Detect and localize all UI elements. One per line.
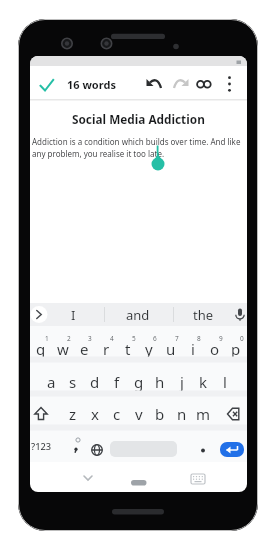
staticText: q [36, 339, 46, 359]
staticText: k [199, 372, 208, 392]
button[interactable] [78, 468, 98, 488]
staticText: a [47, 372, 56, 392]
staticText: u [166, 339, 176, 359]
staticText: c [113, 404, 121, 424]
staticText: b [155, 404, 165, 424]
staticText: I [71, 306, 76, 324]
staticText: m [196, 404, 211, 424]
staticText: t [125, 339, 131, 359]
staticText: z [69, 404, 77, 424]
button[interactable] [125, 468, 155, 488]
staticText: Addiction is a condition which builds ov… [32, 136, 241, 147]
staticText: f [114, 372, 120, 392]
staticText: l [223, 372, 227, 392]
staticText: 9 [219, 334, 223, 343]
button[interactable] [169, 74, 191, 96]
staticText: Social Media Addiction [72, 111, 205, 127]
button[interactable] [191, 74, 213, 96]
staticText: j [180, 372, 184, 392]
button[interactable] [188, 468, 208, 488]
staticText: the [193, 306, 214, 324]
button[interactable] [30, 126, 247, 296]
staticText: i [191, 339, 195, 359]
staticText: w [57, 339, 69, 359]
staticText: 0 [240, 334, 244, 343]
staticText: e [80, 339, 89, 359]
button[interactable] [48, 303, 108, 326]
staticText: 6 [153, 334, 157, 343]
staticText: 2 [67, 334, 71, 343]
staticText: 5 [132, 334, 136, 343]
button[interactable] [220, 442, 244, 457]
staticText: 4 [110, 334, 114, 343]
button[interactable] [34, 74, 56, 96]
staticText: 3 [88, 334, 92, 343]
staticText: o [210, 339, 220, 359]
staticText: 7 [175, 334, 179, 343]
staticText: s [69, 372, 77, 392]
button[interactable] [30, 398, 247, 428]
staticText: g [134, 372, 144, 392]
staticText: h [155, 372, 165, 392]
staticText: any problem, you realise it too late. [32, 148, 165, 159]
button[interactable] [216, 74, 238, 96]
staticText: n [177, 404, 187, 424]
staticText: x [91, 404, 99, 424]
staticText: and [126, 306, 150, 324]
button[interactable] [30, 364, 247, 394]
staticText: r [103, 339, 110, 359]
button[interactable] [168, 303, 228, 326]
staticText: d [90, 372, 100, 392]
staticText: y [145, 339, 153, 359]
button[interactable] [108, 303, 168, 326]
button[interactable] [178, 432, 218, 460]
staticText: p [231, 339, 241, 359]
button[interactable] [144, 74, 166, 96]
staticText: v [135, 404, 143, 424]
button[interactable] [30, 432, 60, 460]
staticText: 1 [45, 334, 49, 343]
button[interactable] [30, 330, 247, 360]
staticText: 8 [197, 334, 201, 343]
staticText: ?123 [31, 440, 52, 453]
staticText: 16 words [67, 77, 116, 92]
